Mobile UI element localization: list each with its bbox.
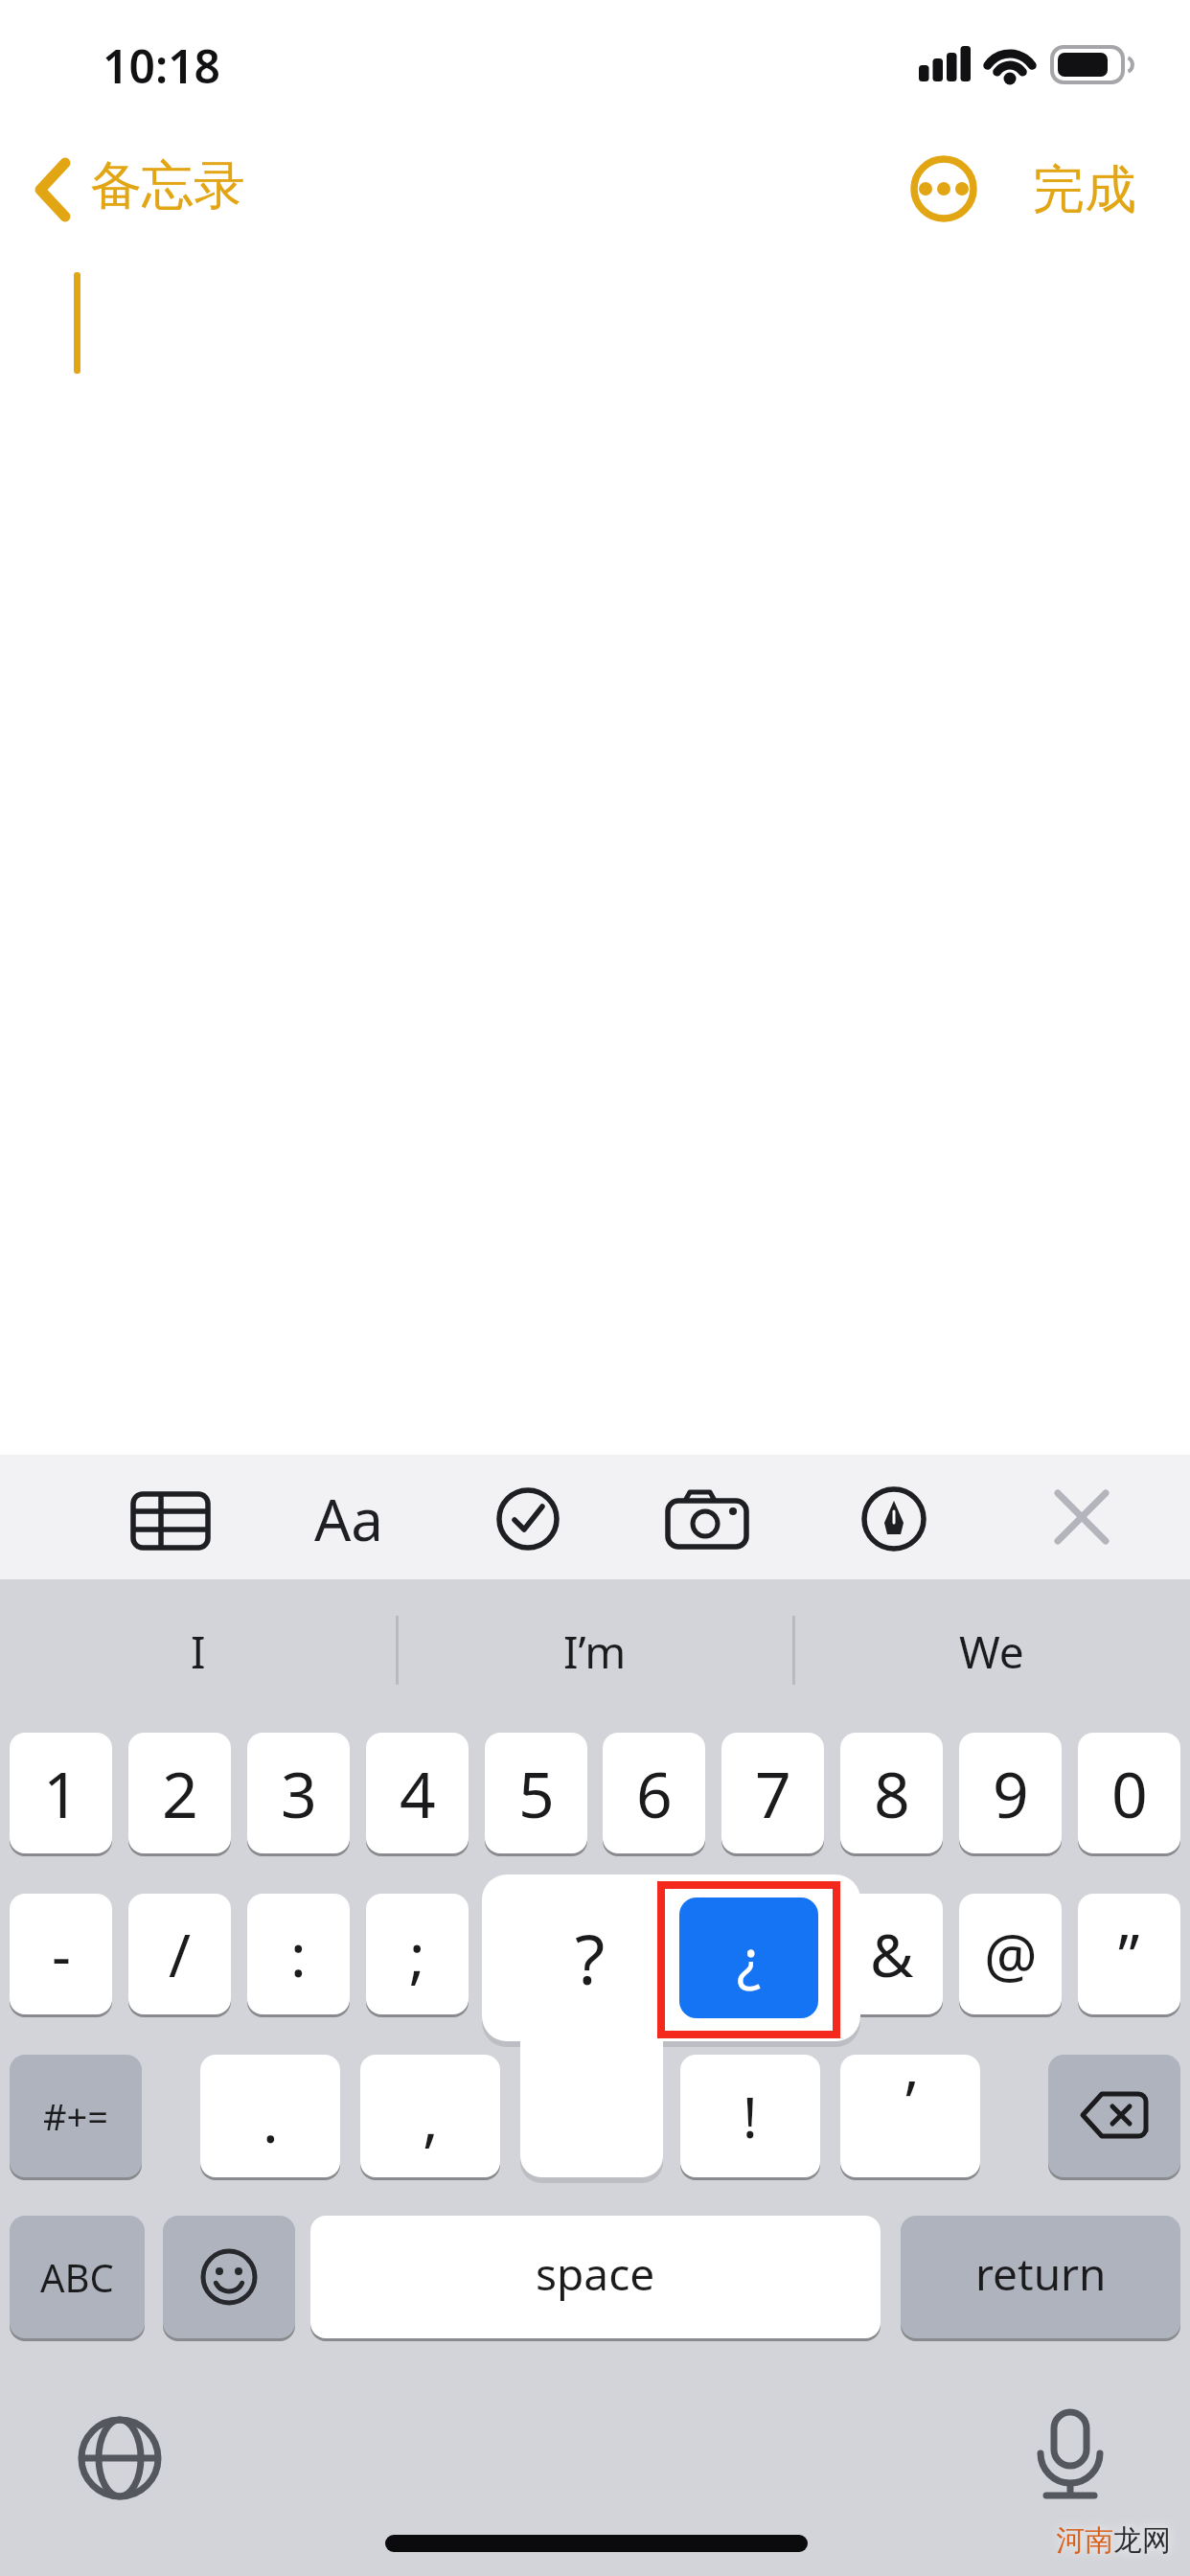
button[interactable]: &	[840, 1894, 943, 2014]
button[interactable]: 备忘录	[19, 144, 287, 236]
button[interactable]: return	[901, 2216, 1180, 2338]
staticText: 4	[400, 1750, 436, 1836]
staticText: Aa	[314, 1480, 383, 1558]
button[interactable]: 7	[721, 1733, 824, 1853]
button[interactable]: I’m	[397, 1608, 793, 1694]
button[interactable]: ¿	[679, 1897, 818, 2018]
staticText: 完成	[1033, 157, 1136, 222]
button[interactable]: .	[200, 2055, 340, 2177]
button[interactable]	[72, 2410, 168, 2506]
staticText: ?	[575, 1911, 606, 2005]
staticText: /	[169, 1914, 192, 1994]
staticText: 1	[43, 1750, 80, 1836]
button[interactable]	[163, 2216, 295, 2338]
staticText: !	[743, 2079, 758, 2154]
button[interactable]: -	[10, 1894, 112, 2014]
staticText: :	[290, 1914, 307, 1994]
staticText: 7	[755, 1750, 791, 1836]
button[interactable]: @	[959, 1894, 1062, 2014]
staticText: 8	[874, 1750, 910, 1836]
button[interactable]: ”	[1078, 1894, 1180, 2014]
staticText: ,	[423, 2078, 439, 2158]
button[interactable]	[659, 1482, 755, 1558]
staticText: 龙网	[1113, 2522, 1171, 2559]
staticText: &	[870, 1914, 914, 1994]
button[interactable]	[1048, 2055, 1180, 2177]
staticText: -	[52, 1914, 71, 1994]
button[interactable]: 8	[840, 1733, 943, 1853]
button[interactable]: 0	[1078, 1733, 1180, 1853]
staticText: ABC	[40, 2251, 114, 2303]
staticText: 0	[1111, 1750, 1148, 1836]
staticText: space	[536, 2243, 655, 2304]
button[interactable]: 3	[247, 1733, 350, 1853]
staticText: ¿	[737, 1920, 762, 1996]
button[interactable]: :	[247, 1894, 350, 2014]
button[interactable]: 6	[603, 1733, 705, 1853]
staticText: .	[263, 2080, 279, 2160]
staticText: 6	[636, 1750, 673, 1836]
staticText: We	[959, 1621, 1024, 1682]
button[interactable]: We	[793, 1608, 1190, 1694]
staticText: 河南	[1056, 2522, 1113, 2559]
staticText: 3	[281, 1750, 317, 1836]
staticText: I	[191, 1621, 206, 1682]
button[interactable]	[1041, 1478, 1123, 1560]
button[interactable]: 2	[128, 1733, 231, 1853]
staticText: 2	[162, 1750, 198, 1836]
button[interactable]: 4	[366, 1733, 469, 1853]
staticText: 10:18	[103, 34, 221, 97]
staticText: ;	[409, 1914, 425, 1994]
button[interactable]	[910, 155, 977, 222]
button[interactable]: /	[128, 1894, 231, 2014]
button[interactable]	[851, 1476, 937, 1562]
button[interactable]	[1022, 2401, 1118, 2506]
button[interactable]: 5	[485, 1733, 587, 1853]
button[interactable]: ABC	[10, 2216, 145, 2338]
button[interactable]	[485, 1476, 571, 1562]
button[interactable]: !	[680, 2055, 820, 2177]
staticText: @	[984, 1914, 1038, 1994]
button[interactable]: space	[310, 2216, 881, 2338]
button[interactable]: ;	[366, 1894, 469, 2014]
button[interactable]	[121, 1482, 220, 1562]
button[interactable]: 9	[959, 1733, 1062, 1853]
staticText: 9	[993, 1750, 1029, 1836]
staticText: ”	[1118, 1914, 1140, 1994]
staticText: 5	[518, 1750, 555, 1836]
staticText: ’	[905, 2060, 916, 2141]
staticText: return	[975, 2243, 1107, 2304]
button[interactable]: ,	[360, 2055, 500, 2177]
staticText: 备忘录	[90, 153, 245, 218]
button[interactable]: ’	[840, 2055, 980, 2177]
button[interactable]: #+=	[10, 2055, 142, 2177]
button[interactable]: 1	[10, 1733, 112, 1853]
button[interactable]: I	[0, 1608, 397, 1694]
staticText: #+=	[43, 2091, 109, 2141]
button[interactable]: Aa	[307, 1476, 412, 1562]
button[interactable]: 完成	[1025, 151, 1150, 228]
staticText: I’m	[563, 1621, 627, 1682]
